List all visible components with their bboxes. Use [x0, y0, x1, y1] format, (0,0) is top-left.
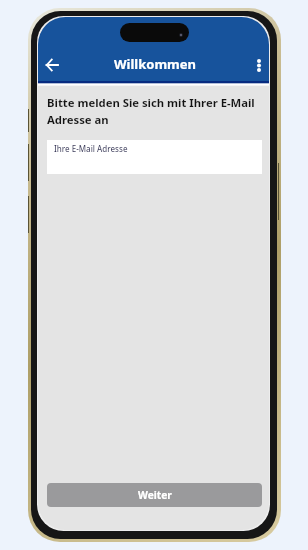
button[interactable]: Weiter: [47, 483, 262, 507]
staticText: Bitte melden Sie sich mit Ihrer E-Mail A…: [47, 95, 262, 127]
button[interactable]: Back: [38, 51, 66, 79]
button[interactable]: More options: [245, 51, 269, 79]
staticText: Willkommen: [114, 55, 196, 73]
staticText: Ihre E-Mail Adresse: [54, 143, 128, 154]
button[interactable]: Ihre E-Mail Adresse: [47, 140, 262, 174]
staticText: Weiter: [138, 488, 172, 502]
